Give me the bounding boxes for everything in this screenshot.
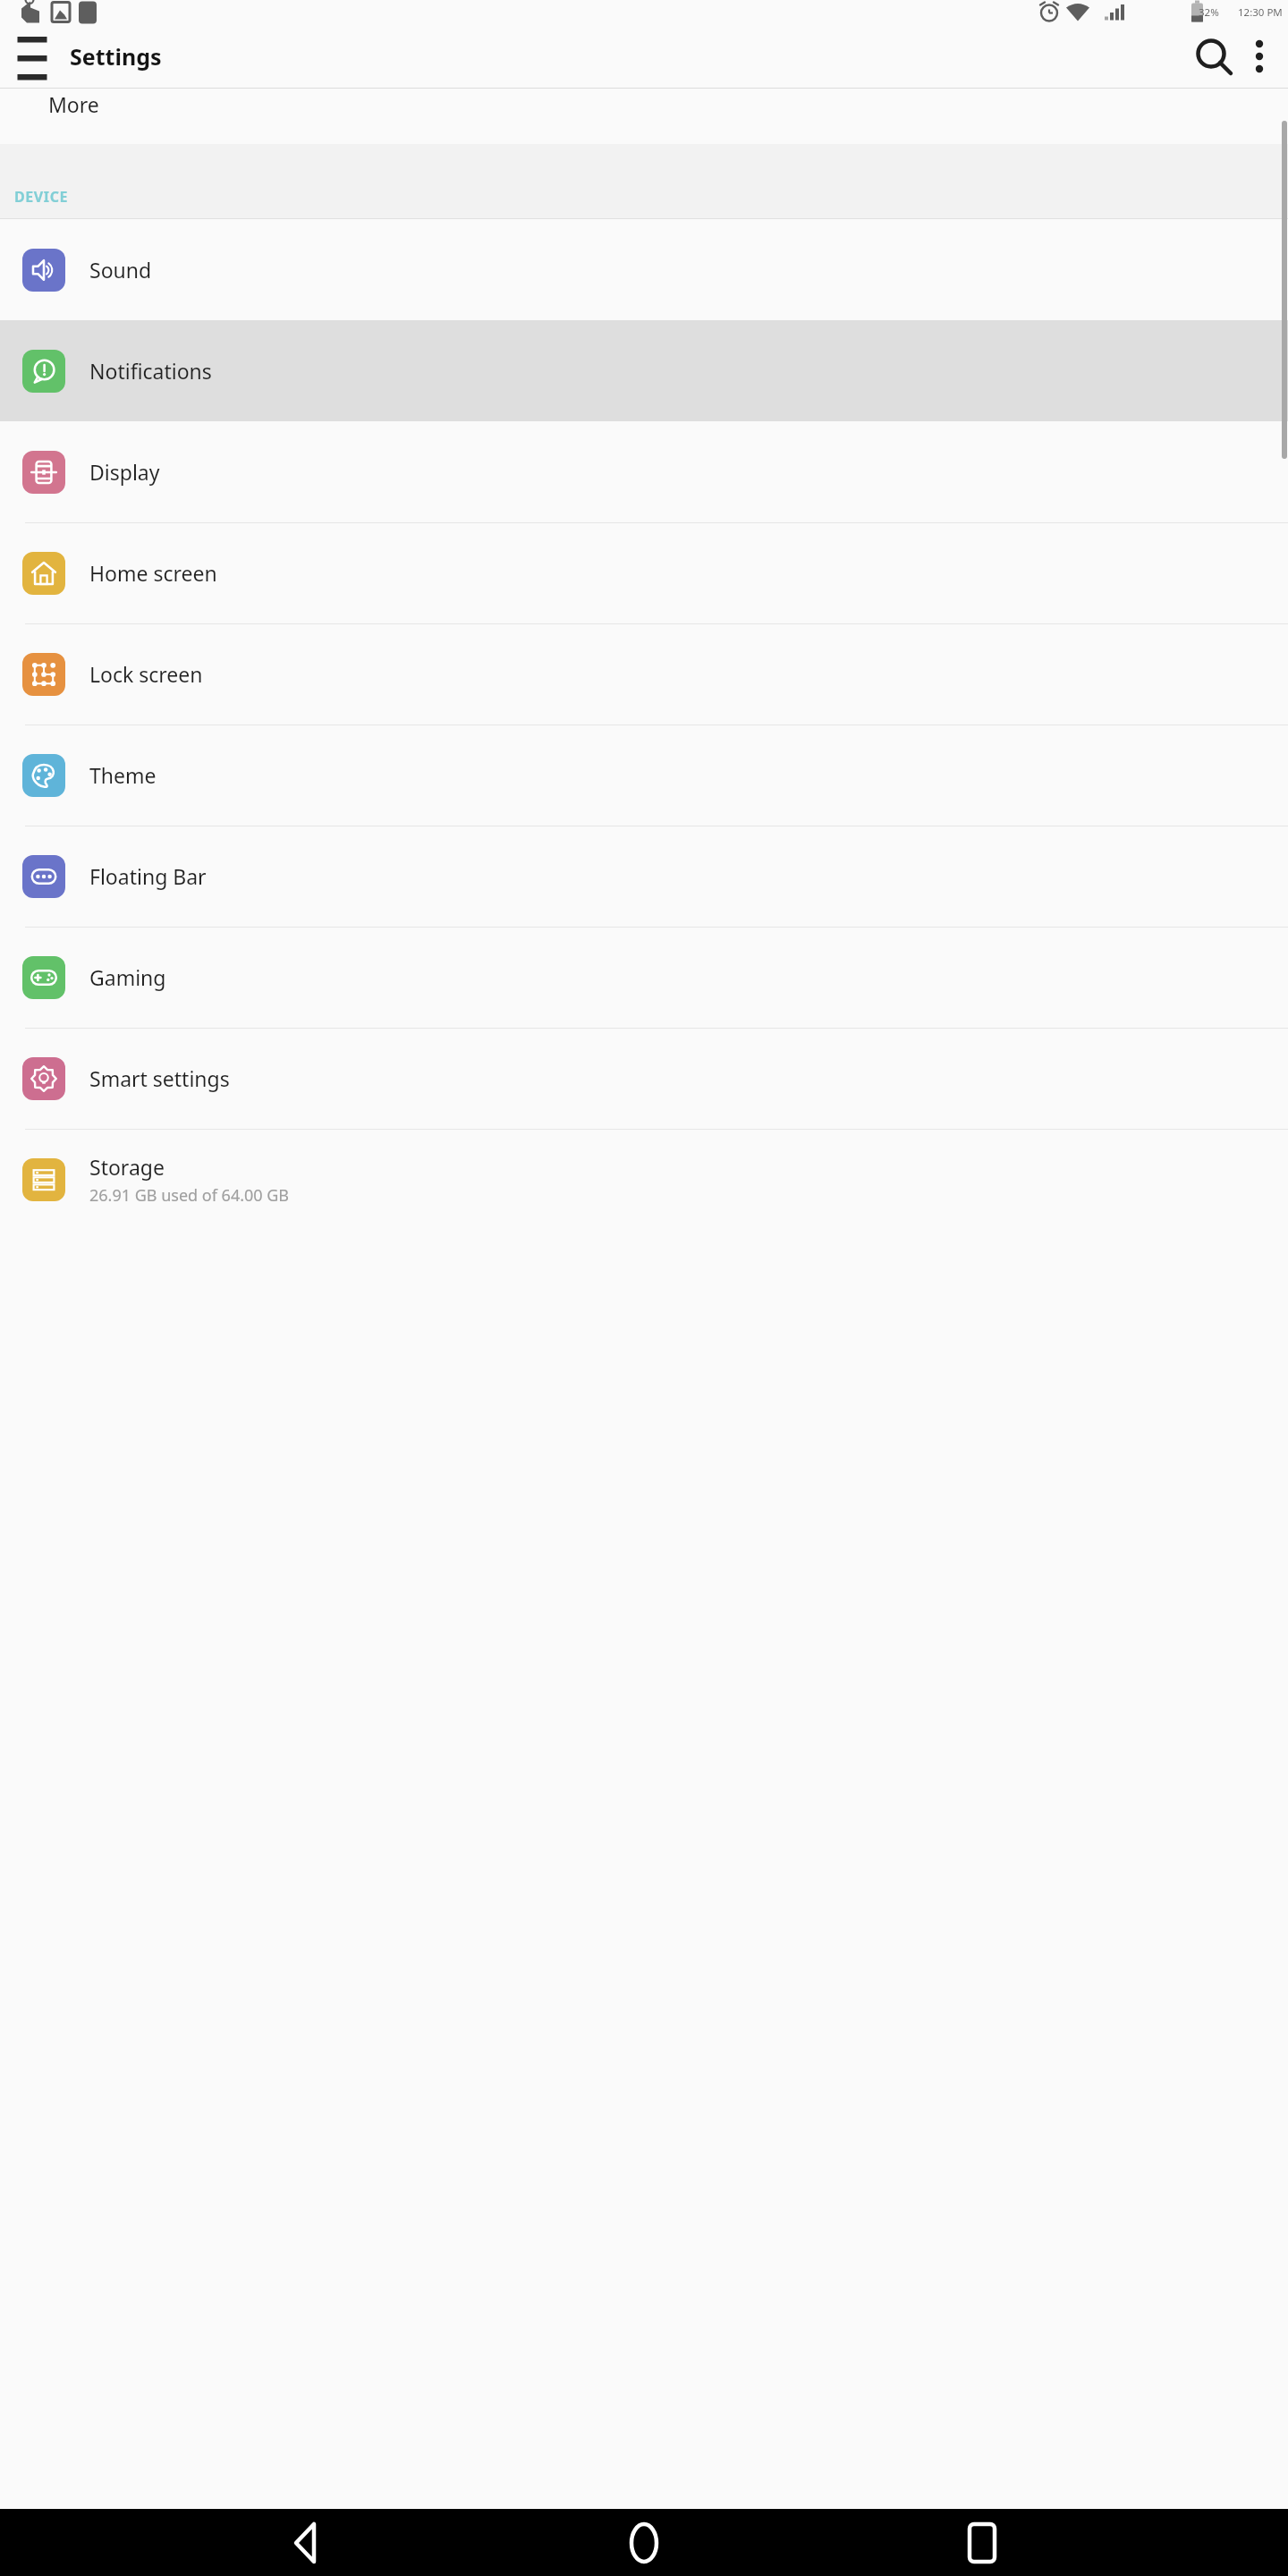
button[interactable]: Sound [0,219,1288,320]
button[interactable]: Search [1188,31,1238,81]
staticText: Smart settings [89,1064,230,1092]
staticText: Gaming [89,963,166,991]
staticText: 12:30 PM [1238,5,1283,20]
staticText: Theme [89,761,157,789]
staticText: Lock screen [89,660,203,688]
button[interactable]: Display [0,421,1288,522]
button[interactable]: Home [612,2511,676,2575]
button[interactable]: Notifications [0,320,1288,421]
button[interactable]: Recent apps [950,2511,1014,2575]
staticText: Settings [70,41,162,72]
button[interactable]: Floating Bar [0,826,1288,927]
button[interactable]: Gaming [0,927,1288,1028]
button[interactable]: Navigation menu [11,35,54,78]
button[interactable]: More options [1238,31,1281,81]
staticText: Display [89,458,160,486]
button[interactable]: Theme [0,724,1288,826]
button[interactable]: Storage [0,1129,1288,1230]
staticText: DEVICE [14,187,69,207]
staticText: Floating Bar [89,862,207,890]
staticText: More [48,90,99,118]
button[interactable]: Lock screen [0,623,1288,724]
staticText: Notifications [89,357,212,385]
staticText: 32% [1199,5,1219,20]
button[interactable]: More [0,89,1288,144]
staticText: Storage [89,1153,165,1181]
button[interactable]: Back [274,2511,338,2575]
staticText: Home screen [89,559,217,587]
button[interactable]: Home screen [0,522,1288,623]
staticText: Sound [89,256,152,284]
staticText: 26.91 GB used of 64.00 GB [89,1184,290,1207]
button[interactable]: Smart settings [0,1028,1288,1129]
